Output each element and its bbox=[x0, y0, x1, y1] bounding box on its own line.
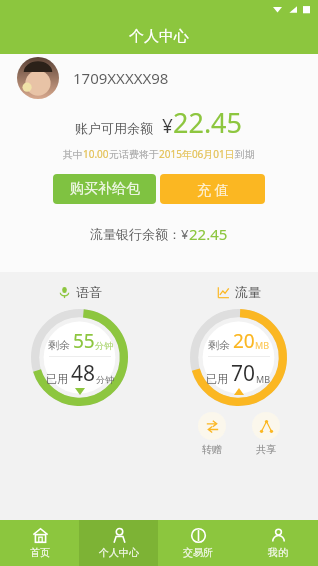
staticText: 流量 bbox=[235, 284, 261, 300]
staticText: 个人中心 bbox=[129, 27, 189, 46]
staticText: MB bbox=[255, 339, 270, 351]
staticText: 共享 bbox=[256, 443, 276, 456]
button[interactable]: 交易所 bbox=[158, 520, 238, 566]
staticText: 流量银行余额： bbox=[90, 226, 181, 242]
staticText: 1709XXXXX98 bbox=[73, 68, 169, 88]
staticText: 充 值 bbox=[197, 180, 229, 199]
button[interactable]: 剩余 bbox=[31, 309, 128, 406]
staticText: 交易所 bbox=[183, 546, 213, 559]
staticText: 70 bbox=[231, 359, 256, 388]
staticText: 分钟 bbox=[95, 340, 113, 351]
staticText: 语音 bbox=[76, 284, 102, 300]
button[interactable]: 充 值 bbox=[160, 174, 265, 204]
staticText: 首页 bbox=[30, 546, 50, 559]
staticText: 55 bbox=[73, 328, 95, 354]
button[interactable]: 转赠 bbox=[196, 410, 228, 458]
button[interactable]: 共享 bbox=[250, 410, 282, 458]
staticText: 账户可用余额 bbox=[75, 120, 153, 136]
staticText: 20 bbox=[233, 328, 255, 354]
staticText: 48 bbox=[71, 359, 96, 388]
button[interactable]: 首页 bbox=[0, 520, 79, 566]
staticText: 个人中心 bbox=[99, 546, 139, 559]
staticText: ¥ bbox=[162, 113, 173, 139]
button[interactable]: 购买补给包 bbox=[53, 174, 156, 204]
staticText: 元话费将于 bbox=[109, 148, 159, 161]
staticText: 到期 bbox=[235, 148, 255, 161]
staticText: 购买补给包 bbox=[70, 180, 140, 198]
button[interactable]: 个人中心 bbox=[79, 520, 158, 566]
staticText: 其中 bbox=[63, 148, 83, 161]
button[interactable]: 我的 bbox=[238, 520, 318, 566]
staticText: 22.45 bbox=[173, 104, 243, 141]
staticText: 剩余 bbox=[48, 338, 70, 352]
button[interactable]: 剩余 bbox=[190, 309, 287, 406]
staticText: 剩余 bbox=[208, 338, 230, 352]
staticText: 10.00 bbox=[83, 147, 109, 161]
staticText: 转赠 bbox=[202, 443, 222, 456]
staticText: MB bbox=[256, 373, 271, 385]
staticText: 我的 bbox=[268, 546, 288, 559]
button[interactable]: 1709XXXXX98 bbox=[0, 54, 318, 101]
staticText: 2015年06月01日 bbox=[159, 147, 235, 161]
staticText: 已用 bbox=[46, 372, 68, 386]
staticText: ¥ bbox=[181, 225, 189, 243]
staticText: 分钟 bbox=[96, 374, 114, 385]
staticText: 已用 bbox=[206, 372, 228, 386]
staticText: 22.45 bbox=[189, 224, 228, 244]
